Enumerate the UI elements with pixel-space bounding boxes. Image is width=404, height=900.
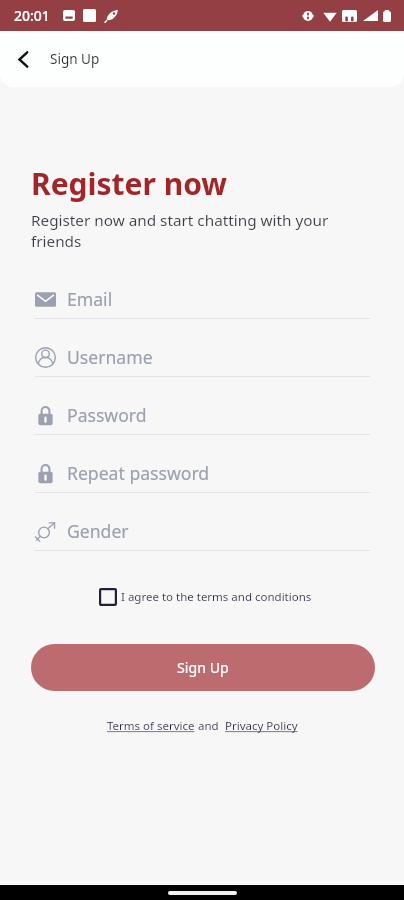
staticText: Username [67,345,153,369]
staticText: Register now [31,163,228,204]
button[interactable]: Password [35,396,370,434]
button[interactable]: Back [3,39,43,79]
staticText: Sign Up [50,50,100,68]
button[interactable]: I agree to the terms and conditions [99,588,312,606]
staticText: Register now and start chatting with you… [31,210,341,252]
button[interactable]: Gender [35,512,370,550]
staticText: Password [67,403,147,427]
button[interactable]: Sign Up [31,644,375,691]
button[interactable]: Terms of service [107,718,195,734]
staticText: Email [67,287,113,311]
staticText: I agree to the terms and conditions [121,589,312,605]
staticText: and [195,718,225,734]
button[interactable]: Repeat password [35,454,370,492]
button[interactable]: Privacy Policy [225,718,298,734]
staticText: Sign Up [177,658,229,677]
button[interactable]: Email [35,280,370,318]
button[interactable]: Username [35,338,370,376]
staticText: Gender [67,519,129,543]
staticText: 20:01 [14,6,50,25]
staticText: Repeat password [67,461,210,485]
